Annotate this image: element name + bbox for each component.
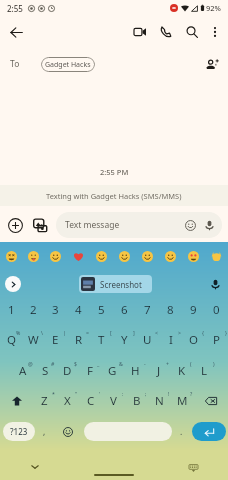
staticText: R — [75, 332, 83, 348]
staticText: ; — [145, 390, 147, 397]
button[interactable]: Search — [182, 22, 202, 42]
staticText: 6 — [121, 302, 128, 318]
button[interactable]: 7 — [136, 297, 159, 322]
button[interactable]: 5 — [90, 297, 113, 322]
staticText: F — [87, 363, 93, 379]
button[interactable] — [159, 244, 182, 268]
button[interactable]: Call — [156, 22, 176, 42]
button[interactable]: 0 — [205, 297, 228, 322]
button[interactable]: Home — [94, 474, 134, 476]
button[interactable]: Hide keyboard — [185, 459, 201, 475]
button[interactable]: 8 — [159, 297, 182, 322]
staticText: L — [201, 363, 208, 379]
button[interactable]: 3 — [44, 297, 67, 322]
button[interactable] — [90, 244, 113, 268]
button[interactable]: Expand suggestions — [5, 276, 21, 292]
button[interactable]: R — [67, 325, 90, 354]
staticText: K — [178, 363, 186, 379]
button[interactable]: C — [79, 386, 102, 415]
button[interactable]: I — [159, 325, 182, 354]
button[interactable]: S — [34, 356, 56, 385]
button[interactable]: ?123 — [3, 422, 35, 441]
button[interactable]: More options — [206, 23, 224, 41]
staticText: # — [51, 360, 55, 367]
button[interactable]: Back — [6, 22, 26, 42]
button[interactable]: Add attachment — [4, 214, 26, 236]
button[interactable]: . — [175, 422, 187, 441]
staticText: B — [133, 393, 141, 409]
button[interactable]: Y — [113, 325, 136, 354]
button[interactable]: Gadget Hacks — [41, 57, 95, 72]
staticText: Screenshot — [100, 279, 142, 290]
staticText: Texting with Gadget Hacks (SMS/MMS) — [46, 191, 182, 201]
button[interactable] — [136, 244, 159, 268]
button[interactable]: Screenshot — [79, 275, 152, 293]
button[interactable]: G — [101, 356, 124, 385]
staticText: A — [19, 363, 27, 379]
staticText: { — [202, 329, 204, 336]
button[interactable]: Gallery — [29, 214, 51, 236]
button[interactable]: E — [44, 325, 67, 354]
button[interactable]: 9 — [182, 297, 205, 322]
button[interactable]: Backspace — [194, 386, 228, 415]
button[interactable]: B — [125, 386, 148, 415]
staticText: Text message — [65, 219, 120, 231]
button[interactable]: Voice input — [206, 275, 224, 293]
button[interactable]: Text message — [56, 212, 222, 238]
staticText: < — [155, 329, 158, 336]
button[interactable]: 6 — [113, 297, 136, 322]
button[interactable] — [0, 244, 22, 268]
button[interactable] — [22, 244, 44, 268]
button[interactable]: H — [124, 356, 147, 385]
staticText: $ — [74, 360, 77, 367]
button[interactable]: J — [147, 356, 170, 385]
button[interactable]: Add people — [202, 54, 222, 74]
button[interactable]: L — [193, 356, 216, 385]
button[interactable] — [44, 244, 67, 268]
button[interactable]: Video call — [130, 22, 150, 42]
button[interactable]: N — [148, 386, 171, 415]
button[interactable]: , — [38, 422, 50, 441]
staticText: ] — [133, 329, 135, 336]
button[interactable] — [67, 244, 90, 268]
button[interactable]: K — [170, 356, 193, 385]
button[interactable]: X — [56, 386, 79, 415]
button[interactable]: Q — [0, 325, 22, 354]
staticText: Gadget Hacks — [45, 60, 91, 70]
button[interactable]: F — [78, 356, 101, 385]
staticText: T — [98, 332, 105, 348]
button[interactable]: M — [171, 386, 194, 415]
staticText: I — [169, 332, 173, 348]
staticText: U — [143, 332, 152, 348]
staticText: X — [64, 393, 71, 409]
button[interactable]: W — [22, 325, 44, 354]
button[interactable]: A — [12, 356, 34, 385]
staticText: 3 — [52, 302, 59, 318]
staticText: Z — [41, 393, 48, 409]
button[interactable]: 2 — [22, 297, 44, 322]
button[interactable]: Shift — [0, 386, 33, 415]
button[interactable]: 1 — [0, 297, 22, 322]
button[interactable]: U — [136, 325, 159, 354]
button[interactable]: D — [56, 356, 78, 385]
button[interactable]: Space — [84, 422, 172, 441]
button[interactable]: Enter — [192, 422, 226, 441]
button[interactable] — [205, 244, 228, 268]
button[interactable]: P — [205, 325, 228, 354]
button[interactable]: T — [90, 325, 113, 354]
button[interactable]: Emoji — [59, 423, 76, 440]
button[interactable]: 4 — [67, 297, 90, 322]
button[interactable]: Back — [27, 459, 43, 475]
staticText: 5 — [98, 302, 105, 318]
button[interactable]: V — [102, 386, 125, 415]
staticText: + — [166, 360, 169, 367]
staticText: J — [157, 363, 161, 379]
staticText: E — [52, 332, 59, 348]
button[interactable] — [113, 244, 136, 268]
staticText: > — [178, 329, 181, 336]
staticText: S — [42, 363, 49, 379]
button[interactable] — [182, 244, 205, 268]
button[interactable]: Z — [33, 386, 56, 415]
staticText: C — [87, 393, 95, 409]
button[interactable]: O — [182, 325, 205, 354]
